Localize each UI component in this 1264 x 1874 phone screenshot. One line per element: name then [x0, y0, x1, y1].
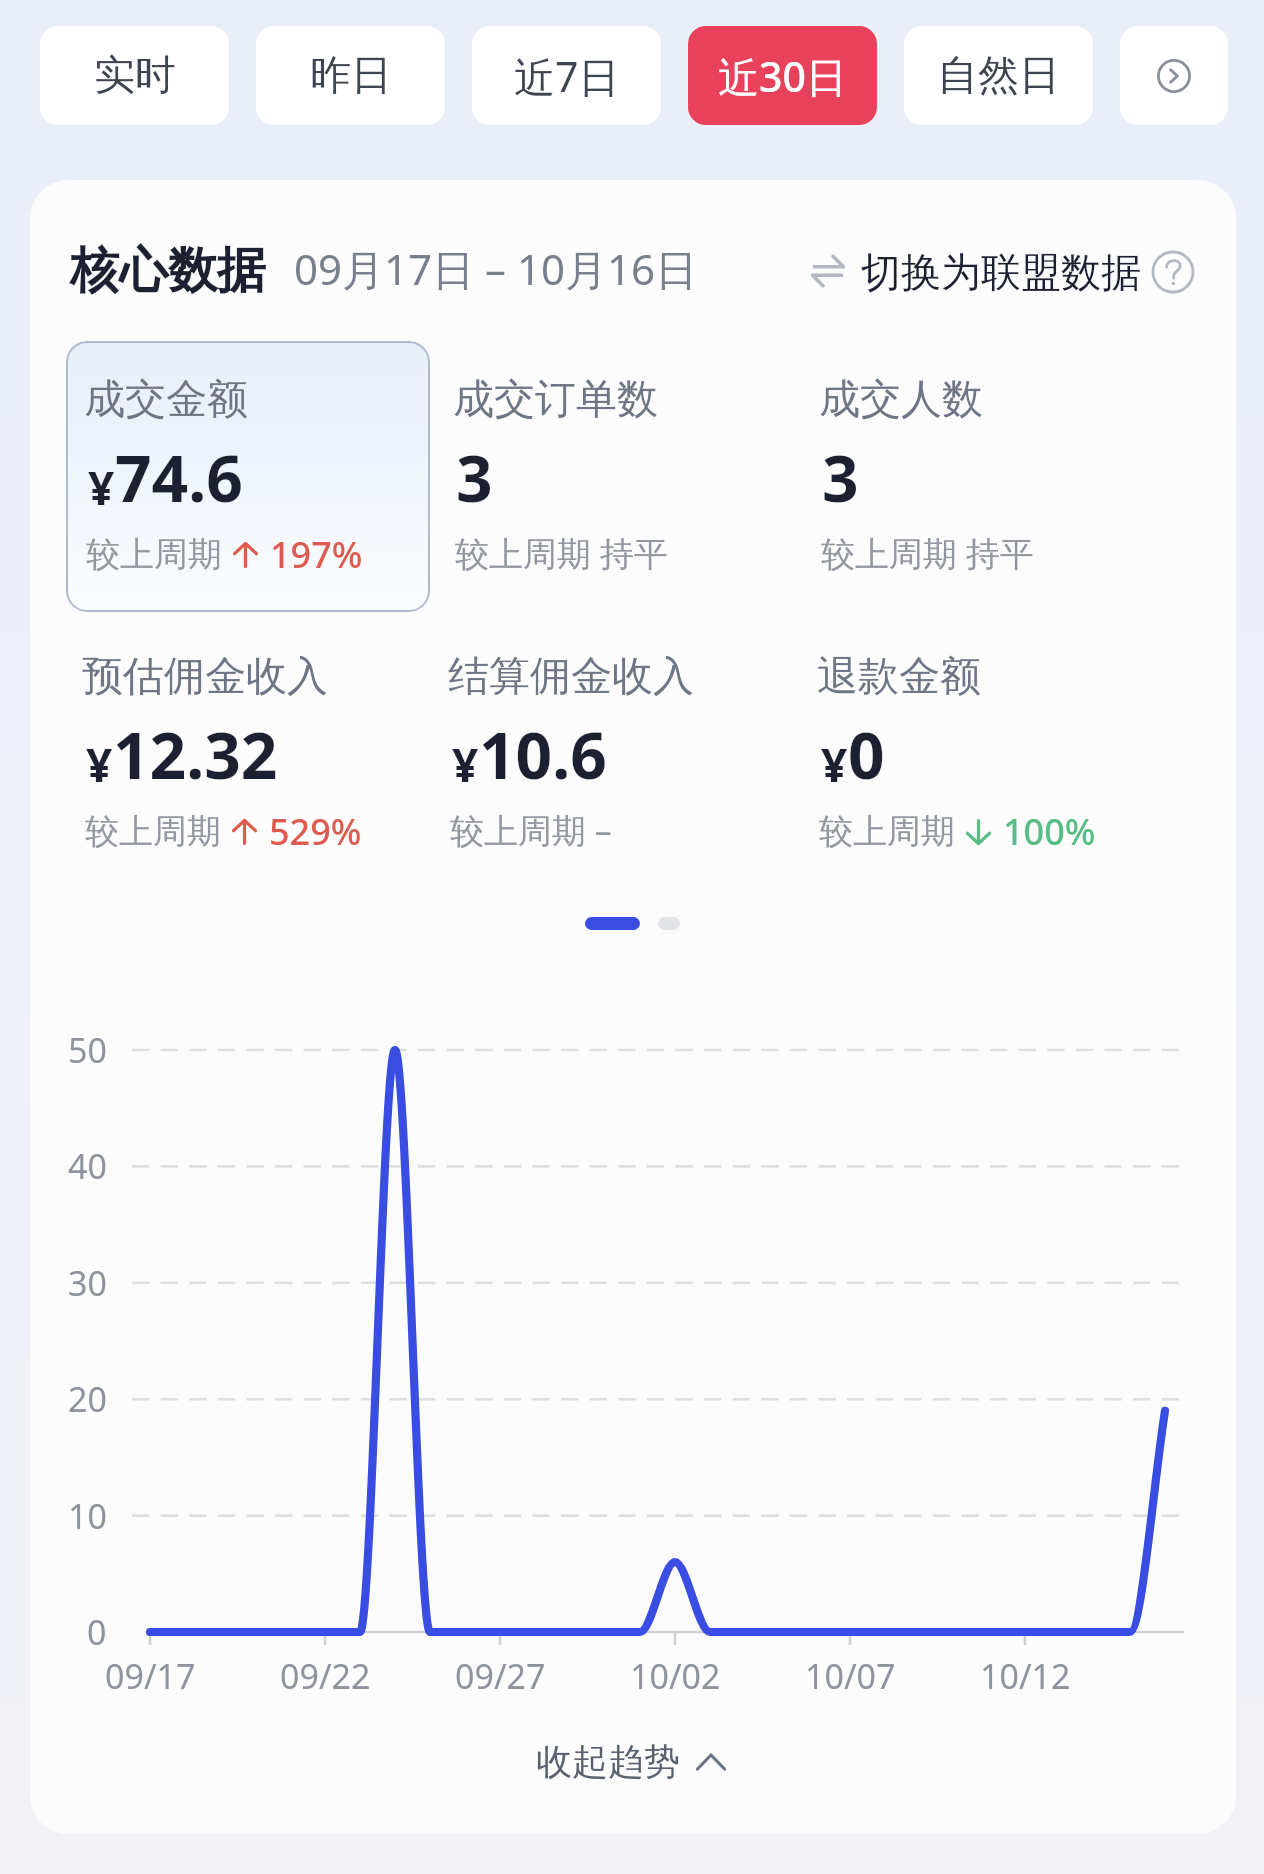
staticText: 3 — [822, 434, 859, 521]
staticText: 30 — [68, 1260, 107, 1306]
staticText: 近7日 — [514, 48, 620, 104]
button[interactable]: 近30日 — [688, 26, 877, 125]
staticText: 退款金额 — [817, 651, 981, 703]
button[interactable]: More date ranges — [1120, 26, 1228, 125]
button[interactable] — [803, 635, 1139, 861]
staticText: 09/27 — [455, 1653, 546, 1699]
button[interactable] — [66, 341, 430, 612]
staticText: 预估佣金收入 — [82, 651, 328, 703]
staticText: 100% — [1003, 807, 1096, 856]
staticText: 核心数据 — [70, 240, 266, 302]
staticText: 实时 — [94, 50, 176, 102]
staticText: 昨日 — [310, 50, 392, 102]
staticText: ¥ — [86, 733, 113, 796]
staticText: 197% — [270, 530, 363, 579]
staticText: 成交金额 — [84, 374, 248, 426]
button[interactable] — [70, 358, 406, 584]
staticText: ¥ — [88, 456, 115, 519]
staticText: 09/17 — [105, 1653, 196, 1699]
staticText: ¥ — [821, 733, 848, 796]
staticText: 40 — [68, 1143, 107, 1189]
staticText: 09月17日 – 10月16日 — [294, 240, 698, 297]
button[interactable] — [805, 358, 1141, 584]
staticText: 较上周期 持平 — [821, 530, 1034, 576]
button[interactable]: 自然日 — [904, 26, 1093, 125]
staticText: 529% — [269, 807, 362, 856]
button[interactable]: 实时 — [40, 26, 229, 125]
button[interactable] — [68, 635, 404, 861]
staticText: 10/02 — [630, 1653, 721, 1699]
staticText: 10/07 — [805, 1653, 896, 1699]
button[interactable]: 收起趋势 — [526, 1731, 736, 1792]
staticText: 近30日 — [718, 48, 847, 104]
staticText: 0 — [848, 711, 885, 798]
staticText: 结算佣金收入 — [448, 651, 694, 703]
staticText: 50 — [68, 1027, 107, 1073]
staticText: 成交订单数 — [453, 374, 658, 426]
staticText: 12.32 — [113, 711, 278, 798]
staticText: 10 — [68, 1493, 107, 1539]
button[interactable]: 近7日 — [472, 26, 661, 125]
staticText: 较上周期 – — [450, 807, 612, 853]
staticText: 自然日 — [937, 50, 1060, 102]
staticText: 成交人数 — [819, 374, 983, 426]
staticText: 09/22 — [280, 1653, 371, 1699]
staticText: 74.6 — [115, 434, 243, 521]
staticText: 较上周期 — [85, 810, 221, 853]
button[interactable] — [434, 635, 770, 861]
staticText: 较上周期 — [86, 533, 222, 576]
staticText: 较上周期 — [819, 810, 955, 853]
button[interactable]: 切换为联盟数据 — [811, 247, 1195, 297]
staticText: 10.6 — [479, 711, 607, 798]
staticText: 10/12 — [980, 1653, 1071, 1699]
staticText: 较上周期 持平 — [455, 530, 668, 576]
staticText: 3 — [456, 434, 493, 521]
staticText: 20 — [68, 1376, 107, 1422]
button[interactable] — [439, 358, 775, 584]
staticText: ¥ — [452, 733, 479, 796]
button[interactable]: 昨日 — [256, 26, 445, 125]
staticText: 切换为联盟数据 — [861, 247, 1141, 297]
staticText: 收起趋势 — [536, 1739, 680, 1784]
staticText: 0 — [87, 1609, 107, 1655]
